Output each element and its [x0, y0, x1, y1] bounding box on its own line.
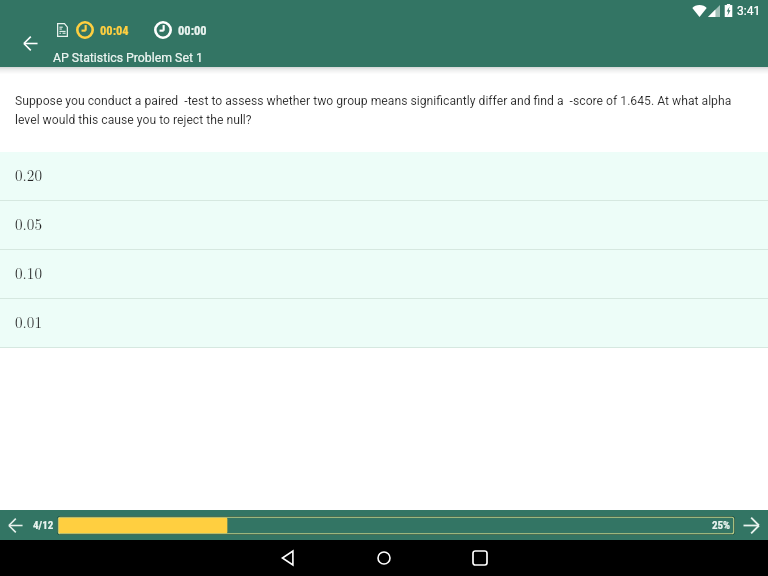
button[interactable]: 0.01	[0, 299, 768, 348]
staticText: 0.10	[15, 262, 43, 284]
button[interactable]: Home	[336, 540, 432, 576]
staticText: 4/12	[33, 519, 54, 532]
staticText: 25%	[712, 519, 731, 532]
staticText: Suppose you conduct a paired -test to as…	[15, 94, 754, 127]
button[interactable]: Recents	[432, 540, 528, 576]
staticText: 0.05	[15, 213, 43, 235]
button[interactable]: Back	[240, 540, 336, 576]
staticText: 00:00	[178, 23, 207, 38]
button[interactable]: 0.05	[0, 201, 768, 250]
button[interactable]: Next question	[735, 510, 768, 540]
button[interactable]: Previous question	[0, 510, 30, 540]
staticText: 00:04	[100, 23, 129, 38]
button[interactable]: 00:04	[57, 20, 207, 40]
staticText: 3:41	[737, 4, 761, 18]
button[interactable]: 25%	[57, 516, 735, 535]
button[interactable]: 0.10	[0, 250, 768, 299]
staticText: 0.01	[15, 311, 43, 333]
button[interactable]: Back	[12, 25, 48, 61]
button[interactable]: 0.20	[0, 152, 768, 201]
staticText: 0.20	[15, 164, 43, 186]
staticText: AP Statistics Problem Set 1	[53, 51, 203, 65]
